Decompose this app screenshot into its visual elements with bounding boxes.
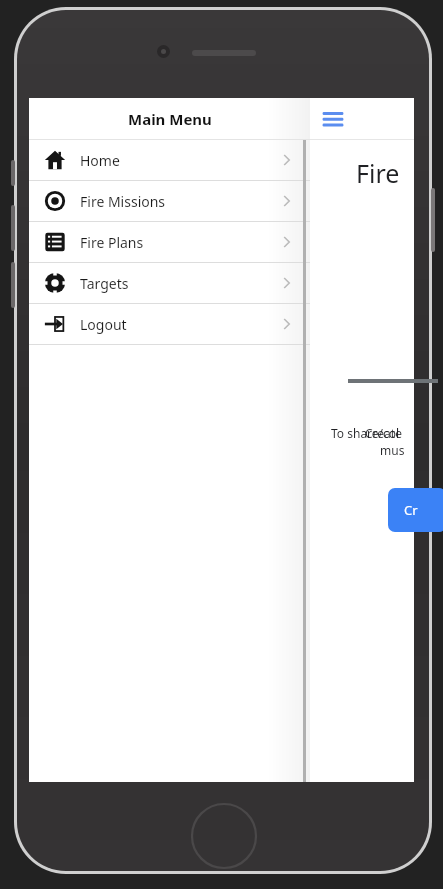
staticText: Fire Plans (80, 233, 144, 252)
button[interactable]: Cr (388, 488, 443, 532)
staticText: To share/col (331, 425, 400, 441)
staticText: Home (80, 151, 120, 170)
staticText: Fire Missions (80, 192, 166, 211)
button[interactable]: Fire Plans (29, 222, 310, 262)
button[interactable]: Fire Missions (29, 181, 310, 221)
button[interactable]: Open navigation menu (320, 107, 346, 130)
staticText: Create (365, 425, 402, 441)
staticText: Targets (80, 274, 129, 293)
button[interactable]: Logout (29, 304, 310, 344)
staticText: Logout (80, 315, 127, 334)
staticText: Fire (356, 156, 400, 190)
button[interactable]: Targets (29, 263, 310, 303)
staticText: mus (380, 442, 405, 458)
staticText: Cr (404, 501, 418, 519)
staticText: Main Menu (128, 109, 212, 129)
button[interactable]: Home (29, 140, 310, 180)
